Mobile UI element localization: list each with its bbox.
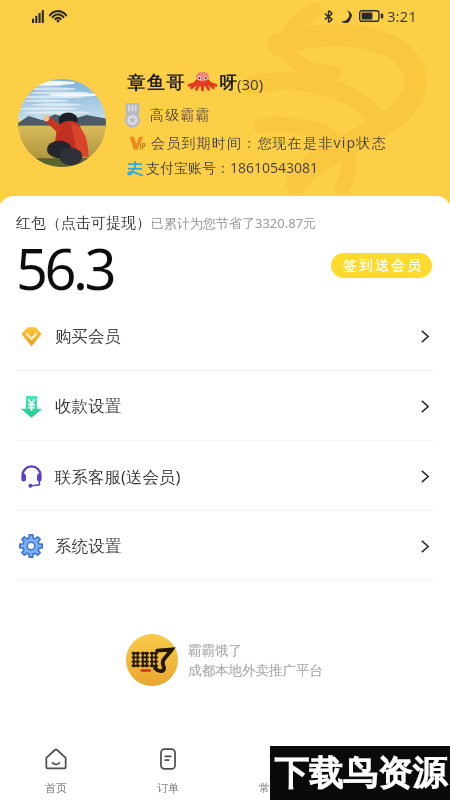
staticText: 红包（点击可提现） xyxy=(16,214,151,233)
staticText: 系统设置 xyxy=(55,536,121,557)
staticText: 3:21 xyxy=(387,6,417,26)
staticText: 高级霸霸 xyxy=(150,107,211,125)
staticText: 个人中心 xyxy=(372,781,416,795)
button[interactable]: 联系客服(送会员) xyxy=(0,441,450,511)
staticText: 联系客服(送会员) xyxy=(55,465,181,488)
staticText: 呀 xyxy=(219,72,237,95)
staticText: 常用功能 xyxy=(259,781,303,795)
staticText: (30) xyxy=(237,74,264,94)
staticText: 霸霸饿了 xyxy=(188,642,242,659)
staticText: 支付宝账号：18610543081 xyxy=(146,158,319,177)
button[interactable]: 首页 xyxy=(0,732,112,800)
staticText: 会员到期时间：您现在是非vip状态 xyxy=(151,133,387,152)
button[interactable]: 订单 xyxy=(112,732,224,800)
button[interactable]: 签到送会员 xyxy=(331,253,432,278)
button[interactable]: 购买会员 xyxy=(0,301,450,371)
staticText: 首页 xyxy=(45,781,67,795)
staticText: 订单 xyxy=(157,781,179,795)
staticText: 章鱼哥 xyxy=(127,72,186,95)
staticText: 下载鸟资源 xyxy=(274,752,447,795)
button[interactable]: 系统设置 xyxy=(0,511,450,581)
staticText: 56.3 xyxy=(16,230,114,306)
staticText: 已累计为您节省了3320.87元 xyxy=(151,214,317,232)
staticText: 购买会员 xyxy=(55,326,121,347)
button[interactable]: 个人中心 xyxy=(337,732,450,800)
button[interactable]: 收款设置 xyxy=(0,371,450,441)
staticText: 收款设置 xyxy=(55,396,121,417)
staticText: 成都本地外卖推广平台 xyxy=(188,662,323,679)
staticText: 签到送会员 xyxy=(342,257,422,275)
button[interactable]: 常用功能 xyxy=(224,732,337,800)
